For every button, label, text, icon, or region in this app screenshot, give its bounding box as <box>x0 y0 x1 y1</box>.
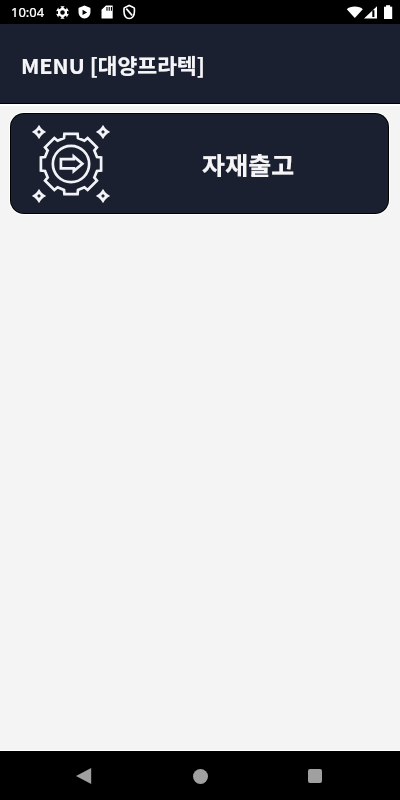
button[interactable]: Back <box>62 754 106 798</box>
button[interactable]: 자재출고 <box>11 114 388 213</box>
button[interactable]: Recents <box>293 754 337 798</box>
staticText: 자재출고 <box>202 146 295 182</box>
button[interactable]: Home <box>178 754 222 798</box>
staticText: 10:04 <box>11 3 45 21</box>
staticText: MENU [대양프라텍] <box>21 49 205 80</box>
